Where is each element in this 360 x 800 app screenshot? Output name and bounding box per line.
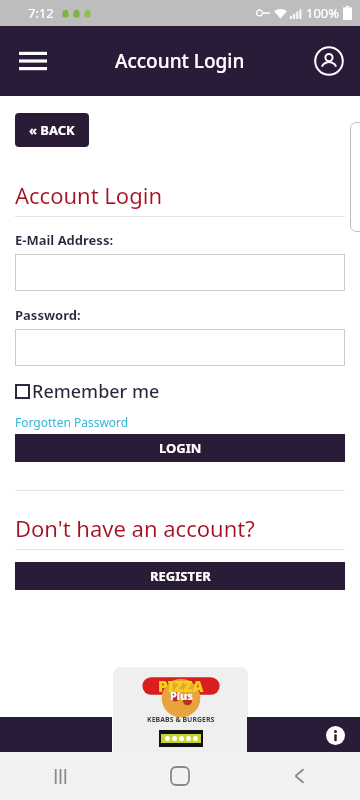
button[interactable]: LOGIN xyxy=(15,434,345,462)
button[interactable]: Account xyxy=(306,38,352,84)
button[interactable] xyxy=(15,329,345,366)
staticText: Plus xyxy=(170,688,193,703)
staticText: Password: xyxy=(15,306,81,324)
staticText: 100% xyxy=(306,4,340,22)
button[interactable]: Home xyxy=(156,752,204,800)
button[interactable]: Information xyxy=(322,722,348,748)
button[interactable]: REGISTER xyxy=(15,562,345,590)
button[interactable]: Forgotten Password xyxy=(15,414,129,430)
staticText: Remember me xyxy=(32,379,160,404)
button[interactable]: Back xyxy=(276,752,324,800)
staticText: Account Login xyxy=(15,180,162,210)
button[interactable] xyxy=(15,254,345,291)
staticText: LOGIN xyxy=(159,439,202,457)
staticText: PIZZA xyxy=(158,676,204,696)
button[interactable]: Remember me xyxy=(15,379,160,404)
staticText: E-Mail Address: xyxy=(15,231,114,249)
button[interactable]: Menu xyxy=(10,38,56,84)
button[interactable]: « BACK xyxy=(15,113,89,147)
button[interactable]: Recents xyxy=(36,752,84,800)
staticText: Don't have an account? xyxy=(15,513,255,543)
staticText: Account Login xyxy=(115,48,245,74)
staticText: « BACK xyxy=(29,121,75,139)
staticText: 7:12 xyxy=(28,4,54,22)
staticText: KEBABS & BURGERS xyxy=(147,715,215,725)
staticText: REGISTER xyxy=(150,567,211,585)
